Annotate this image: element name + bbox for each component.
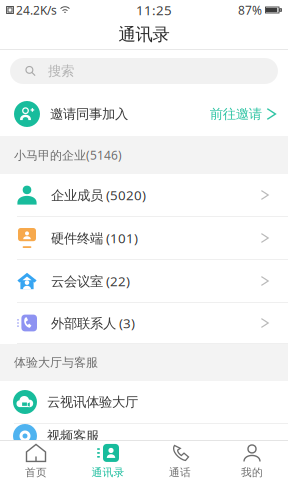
staticText: 24.2K/s bbox=[16, 2, 57, 18]
staticText: 通话 bbox=[169, 466, 191, 479]
button[interactable]: 云视讯体验大厅 bbox=[0, 381, 288, 424]
staticText: 首页 bbox=[25, 466, 47, 479]
button[interactable]: 硬件终端 (101) bbox=[0, 217, 288, 260]
button[interactable]: 视频客服 bbox=[0, 424, 288, 466]
staticText: 通讯录 bbox=[91, 466, 124, 479]
staticText: 87% bbox=[238, 2, 262, 18]
button[interactable]: 我的 bbox=[216, 440, 288, 480]
staticText: 小马甲的企业(5146) bbox=[14, 147, 122, 163]
button[interactable]: 云会议室 (22) bbox=[0, 260, 288, 303]
staticText: 外部联系人 (3) bbox=[51, 314, 135, 332]
button[interactable]: 首页 bbox=[0, 440, 72, 480]
button[interactable]: 外部联系人 (3) bbox=[0, 303, 288, 344]
button[interactable]: 通讯录 bbox=[72, 440, 144, 480]
staticText: 视频客服 bbox=[47, 428, 99, 444]
staticText: 通讯录 bbox=[118, 24, 169, 45]
staticText: 硬件终端 (101) bbox=[51, 229, 138, 247]
staticText: 云视讯体验大厅 bbox=[47, 394, 138, 410]
staticText: 云会议室 (22) bbox=[51, 272, 130, 290]
staticText: 我的 bbox=[241, 466, 263, 479]
staticText: 企业成员 (5020) bbox=[51, 186, 146, 204]
staticText: 邀请同事加入 bbox=[50, 106, 128, 122]
staticText: 搜索 bbox=[48, 63, 74, 79]
button[interactable]: 企业成员 (5020) bbox=[0, 174, 288, 217]
button[interactable]: 通话 bbox=[144, 440, 216, 480]
button[interactable]: 邀请同事加入 bbox=[0, 85, 288, 136]
staticText: 11:25 bbox=[136, 1, 172, 19]
staticText: 体验大厅与客服 bbox=[14, 355, 98, 370]
staticText: 前往邀请 bbox=[210, 106, 262, 122]
